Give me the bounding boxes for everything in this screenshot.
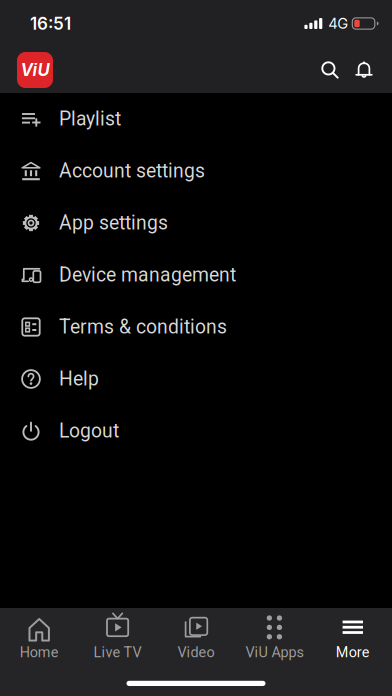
- button[interactable]: Playlist: [0, 93, 392, 145]
- button[interactable]: Search: [318, 58, 342, 82]
- button[interactable]: More: [314, 617, 392, 661]
- staticText: Home: [20, 644, 59, 661]
- staticText: App settings: [59, 212, 168, 234]
- staticText: Logout: [59, 420, 119, 442]
- staticText: 4G: [328, 15, 348, 32]
- button[interactable]: Notifications: [342, 58, 392, 82]
- staticText: Account settings: [59, 160, 205, 182]
- staticText: More: [336, 644, 370, 661]
- staticText: Help: [59, 368, 99, 390]
- button[interactable]: Logout: [0, 405, 392, 457]
- button[interactable]: App settings: [0, 197, 392, 249]
- button[interactable]: ViU Apps: [235, 617, 314, 661]
- staticText: ViU Apps: [245, 644, 303, 661]
- button[interactable]: Account settings: [0, 145, 392, 197]
- button[interactable]: Home: [0, 617, 78, 661]
- button[interactable]: Live TV: [78, 617, 157, 661]
- staticText: Terms & conditions: [59, 316, 227, 338]
- button[interactable]: Device management: [0, 249, 392, 301]
- staticText: Video: [177, 644, 214, 661]
- button[interactable]: Terms & conditions: [0, 301, 392, 353]
- staticText: 16:51: [30, 13, 71, 34]
- button[interactable]: Help: [0, 353, 392, 405]
- staticText: Live TV: [94, 644, 142, 661]
- button[interactable]: Video: [157, 617, 235, 661]
- staticText: Device management: [59, 264, 236, 286]
- staticText: Playlist: [59, 108, 121, 130]
- staticText: ViU: [20, 60, 49, 80]
